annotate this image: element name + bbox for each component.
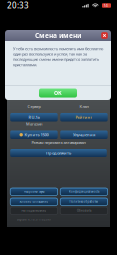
- staticText: Улучшения: [73, 132, 95, 137]
- button[interactable]: Политика обработки: [60, 198, 108, 205]
- staticText: Сервер: [27, 104, 40, 109]
- staticText: Рейтинг: [75, 115, 92, 120]
- staticText: 14: [104, 3, 108, 8]
- button[interactable]: Обновить: [60, 207, 108, 214]
- staticText: Версия 4.18.0 (18204): [17, 218, 51, 221]
- staticText: ОК: [54, 89, 62, 97]
- button[interactable]: Закрыть: [100, 30, 109, 41]
- staticText: У тебя есть возможность поменять имя бес…: [13, 46, 103, 67]
- staticText: Смена имени: [35, 31, 81, 40]
- staticText: RU-1a: [28, 115, 39, 120]
- staticText: Условия соглашения: [19, 200, 48, 203]
- staticText: Обновить: [77, 209, 91, 212]
- staticText: Продолжить: [46, 150, 71, 156]
- button[interactable]: Нет подключения: [10, 207, 58, 214]
- button[interactable]: Купить 1500: [10, 130, 58, 139]
- staticText: Магазин: [26, 121, 42, 127]
- button[interactable]: RU-1a: [10, 113, 58, 121]
- button[interactable]: ОК: [39, 86, 77, 100]
- button[interactable]: Конфиденциальность: [60, 188, 108, 195]
- staticText: Политика обработки: [69, 200, 98, 203]
- button[interactable]: Продолжить: [10, 149, 107, 157]
- staticText: Купить 1500: [24, 132, 48, 137]
- button[interactable]: Улучшения: [60, 130, 108, 139]
- button[interactable]: Настройки звука: [10, 188, 58, 195]
- staticText: Настройки звука: [24, 190, 44, 193]
- button[interactable]: Условия соглашения: [10, 198, 58, 205]
- button[interactable]: Рейтинг: [60, 113, 108, 121]
- staticText: Конфиденциальность: [69, 190, 99, 193]
- staticText: Режим перехвата активирован: [31, 140, 85, 145]
- staticText: Клан: [79, 104, 88, 109]
- staticText: 20:33: [7, 0, 29, 11]
- staticText: Нет подключения: [21, 209, 46, 212]
